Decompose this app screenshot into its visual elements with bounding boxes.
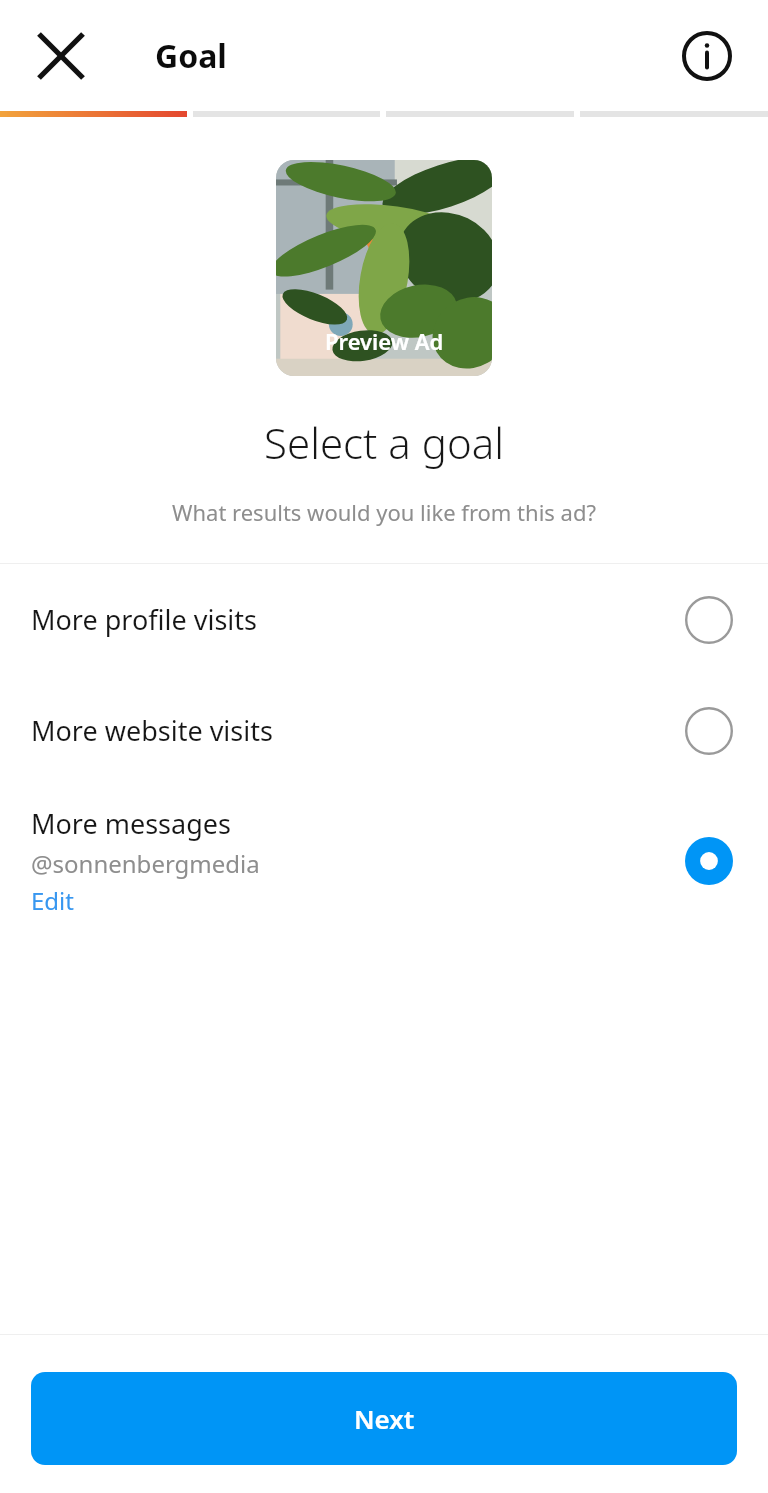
- staticText: @sonnenbergmedia: [31, 847, 260, 880]
- staticText: Next: [354, 1401, 415, 1436]
- staticText: Select a goal: [0, 414, 768, 471]
- staticText: More messages: [31, 805, 231, 842]
- button[interactable]: Preview Ad: [276, 160, 492, 376]
- staticText: More website visits: [31, 712, 273, 749]
- staticText: Goal: [155, 34, 227, 78]
- staticText: Preview Ad: [325, 326, 444, 356]
- staticText: Edit: [31, 884, 74, 917]
- button[interactable]: More profile visits: [0, 564, 768, 675]
- button[interactable]: Next: [31, 1372, 737, 1465]
- button[interactable]: More messages: [0, 786, 768, 936]
- button[interactable]: More website visits: [0, 675, 768, 786]
- staticText: What results would you like from this ad…: [0, 497, 768, 527]
- button[interactable]: Close: [24, 19, 98, 93]
- staticText: More profile visits: [31, 601, 257, 638]
- button[interactable]: Info: [670, 19, 744, 93]
- button[interactable]: Edit: [31, 884, 74, 917]
